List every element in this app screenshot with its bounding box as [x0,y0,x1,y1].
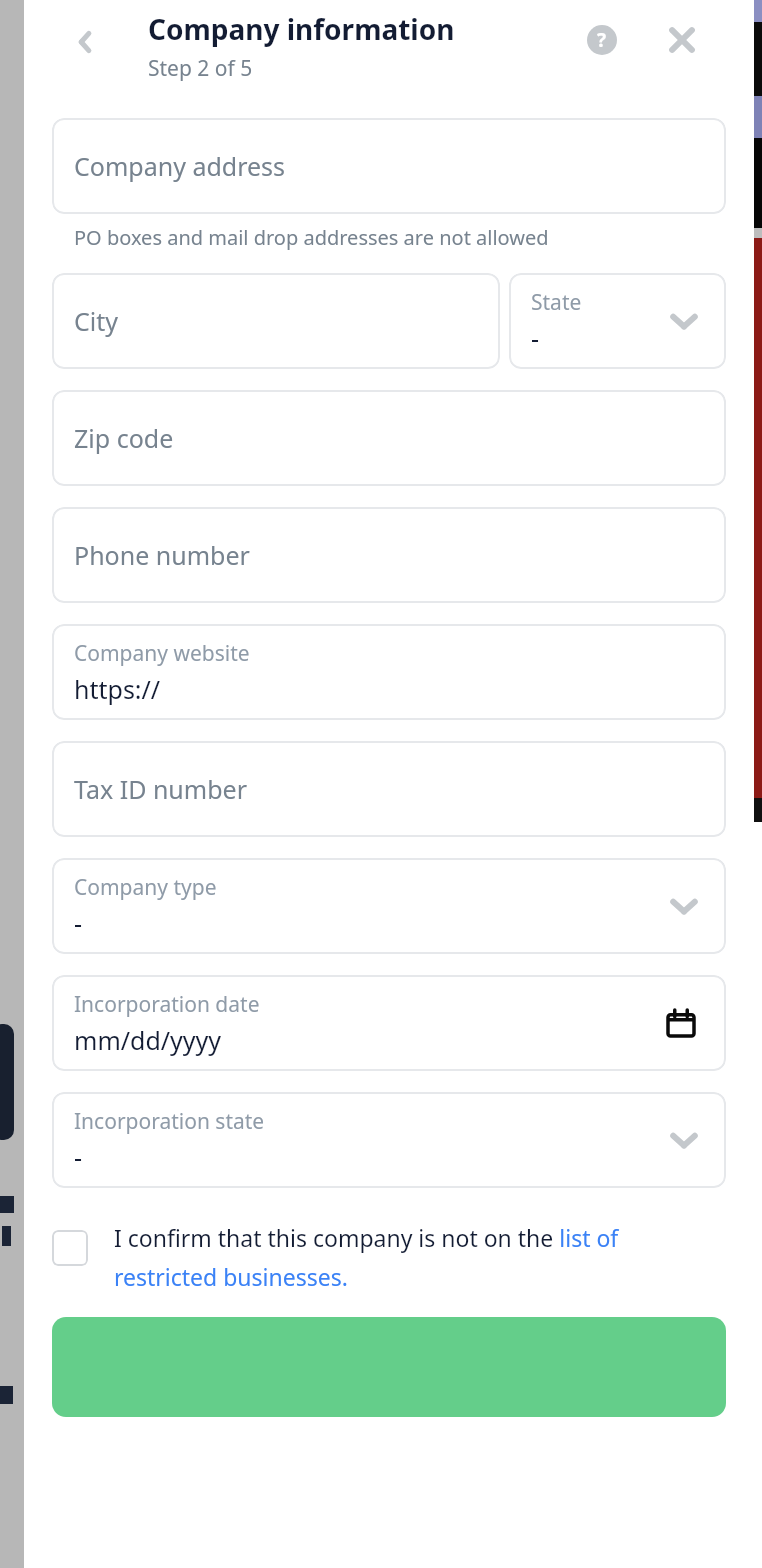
button[interactable]: Company type [52,858,726,954]
staticText: - [74,906,83,940]
staticText: Zip code [74,421,174,455]
other: Open Company type menu [664,886,704,926]
staticText: Company information [148,10,455,48]
button[interactable] [52,1317,726,1417]
staticText: Company type [74,873,217,902]
button[interactable]: State [509,273,726,369]
button[interactable]: I confirm that this company is not on th… [52,1222,726,1293]
staticText: https:// [74,672,161,706]
staticText: Incorporation state [74,1107,265,1136]
staticText: Step 2 of 5 [148,54,253,83]
staticText: Phone number [74,538,250,572]
staticText: - [74,1140,83,1174]
staticText: - [531,321,540,355]
staticText: City [74,304,119,338]
staticText: State [531,288,582,317]
staticText: Company address [74,149,286,183]
other: Open State menu [664,301,704,341]
button[interactable]: Company website [52,624,726,720]
button[interactable]: Help [576,14,628,66]
staticText: ? [597,27,607,53]
staticText: PO boxes and mail drop addresses are not… [74,224,549,251]
button[interactable]: Close [656,14,708,66]
other: Open Incorporation state menu [664,1120,704,1160]
button[interactable]: Incorporation date [52,975,726,1071]
button[interactable]: Tax ID number [52,741,726,837]
staticText: Tax ID number [74,772,247,806]
button[interactable]: Zip code [52,390,726,486]
button[interactable]: Company address [52,118,726,214]
button[interactable]: Phone number [52,507,726,603]
button[interactable]: Back [58,14,114,70]
staticText: Incorporation date [74,990,260,1019]
staticText: Company website [74,639,250,668]
staticText: I confirm that this company is not on th… [114,1222,726,1293]
staticText: mm/dd/yyyy [74,1023,222,1057]
button[interactable]: Incorporation state [52,1092,726,1188]
button[interactable]: City [52,273,500,369]
other: Pick date [664,1006,698,1040]
